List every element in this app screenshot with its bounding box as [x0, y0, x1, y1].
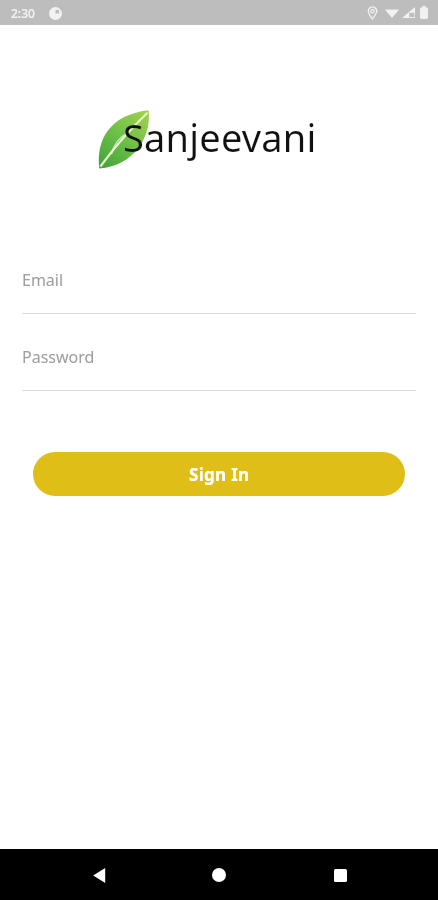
staticText: Password	[22, 346, 95, 368]
staticText: Email	[22, 269, 64, 291]
button[interactable]: Back	[77, 853, 121, 897]
button[interactable]: Home	[197, 853, 241, 897]
button[interactable]: Recent apps	[318, 853, 362, 897]
button[interactable]: Sign In	[33, 452, 405, 496]
staticText: Sign In	[189, 463, 250, 486]
button[interactable]: Email	[22, 269, 416, 314]
button[interactable]: Password	[22, 346, 416, 391]
staticText: Sanjeevani	[123, 111, 317, 163]
staticText: 2:30	[11, 5, 35, 21]
